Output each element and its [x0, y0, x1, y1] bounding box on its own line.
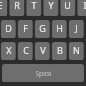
staticText: J: [75, 22, 78, 34]
staticText: U: [64, 0, 71, 11]
staticText: Y: [48, 0, 54, 11]
button[interactable]: B: [52, 42, 67, 60]
button[interactable]: V: [35, 42, 50, 60]
button[interactable]: H: [52, 20, 67, 38]
staticText: G: [39, 22, 46, 34]
staticText: E: [0, 0, 3, 11]
staticText: Spasi: [35, 69, 52, 78]
button[interactable]: Spasi: [2, 64, 84, 82]
button[interactable]: N: [69, 42, 84, 60]
button[interactable]: D: [1, 20, 16, 38]
button[interactable]: J: [69, 20, 84, 38]
button[interactable]: Y: [43, 0, 58, 16]
button[interactable]: X: [1, 42, 16, 60]
button[interactable]: G: [35, 20, 50, 38]
button[interactable]: I: [77, 0, 86, 16]
staticText: T: [31, 0, 37, 11]
staticText: B: [57, 44, 63, 56]
button[interactable]: C: [18, 42, 33, 60]
button[interactable]: T: [26, 0, 41, 16]
staticText: V: [40, 44, 46, 56]
button[interactable]: E: [0, 0, 7, 16]
staticText: H: [56, 22, 63, 34]
button[interactable]: U: [60, 0, 75, 16]
staticText: R: [14, 0, 20, 11]
staticText: C: [23, 44, 29, 56]
staticText: N: [73, 44, 80, 56]
button[interactable]: F: [18, 20, 33, 38]
button[interactable]: R: [9, 0, 24, 16]
staticText: I: [83, 0, 86, 11]
staticText: D: [5, 22, 12, 34]
staticText: X: [6, 44, 12, 56]
staticText: F: [23, 22, 28, 34]
